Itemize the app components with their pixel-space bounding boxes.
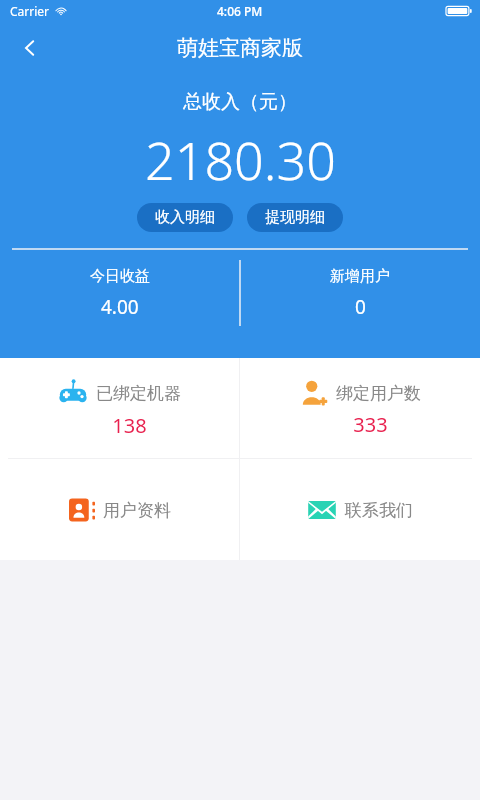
staticText: 收入明细 xyxy=(155,208,215,227)
staticText: Carrier xyxy=(10,3,50,19)
staticText: 138 xyxy=(112,412,147,439)
staticText: 0 xyxy=(355,294,366,320)
staticText: 2180.30 xyxy=(145,124,336,195)
button[interactable]: Contact us xyxy=(240,459,480,560)
staticText: 萌娃宝商家版 xyxy=(177,35,303,61)
staticText: 4.00 xyxy=(101,294,139,320)
staticText: 已绑定机器 xyxy=(96,383,181,404)
staticText: 总收入（元） xyxy=(183,90,297,114)
staticText: 联系我们 xyxy=(345,500,413,521)
staticText: 今日收益 xyxy=(90,267,150,286)
staticText: 提现明细 xyxy=(265,208,325,227)
button[interactable]: 今日收益 xyxy=(0,250,240,336)
button[interactable]: 新增用户 xyxy=(240,250,480,336)
button[interactable]: 提现明细 xyxy=(247,203,343,232)
staticText: 绑定用户数 xyxy=(336,383,421,404)
staticText: 新增用户 xyxy=(330,267,390,286)
staticText: 用户资料 xyxy=(103,500,171,521)
button[interactable]: 收入明细 xyxy=(137,203,233,232)
button[interactable]: Bound users xyxy=(240,358,480,458)
button[interactable]: Back xyxy=(8,26,52,70)
button[interactable]: Bound machines xyxy=(0,358,239,458)
staticText: 4:06 PM xyxy=(217,3,263,19)
staticText: 333 xyxy=(353,411,388,438)
button[interactable]: User profile xyxy=(0,459,239,560)
